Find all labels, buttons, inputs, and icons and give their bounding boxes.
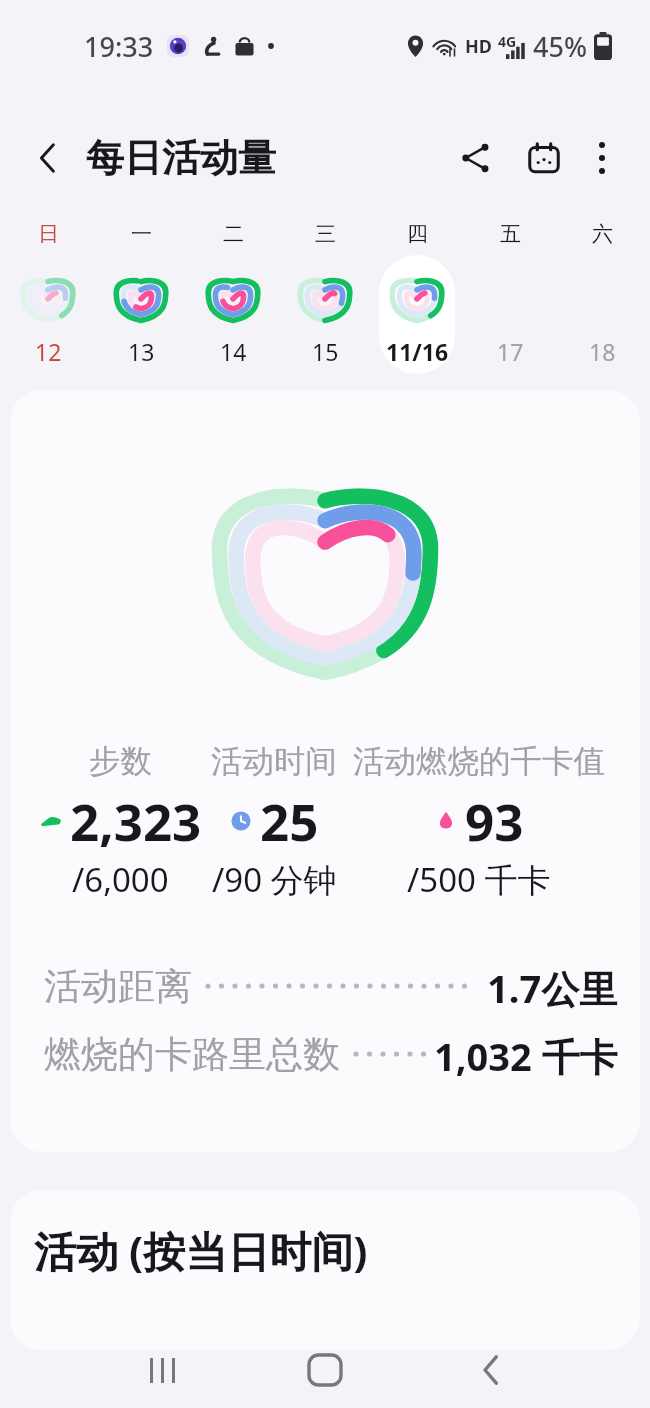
button[interactable]: Recent apps — [126, 1334, 198, 1406]
button[interactable]: Back — [455, 1334, 527, 1406]
staticText: 19:33 — [84, 28, 154, 65]
staticText: 11/16 — [386, 336, 449, 366]
staticText: 17 — [497, 336, 524, 366]
staticText: 25 — [260, 786, 319, 855]
button[interactable]: Home — [289, 1334, 361, 1406]
staticText: 15 — [312, 336, 339, 366]
staticText: /6,000 — [72, 857, 169, 902]
staticText: 五 — [500, 221, 521, 247]
staticText: 12 — [35, 336, 62, 366]
button[interactable]: 六 — [558, 208, 646, 388]
staticText: 三 — [315, 221, 336, 247]
staticText: 步数 — [89, 742, 152, 782]
staticText: 一 — [131, 221, 152, 247]
staticText: 二 — [223, 221, 244, 247]
button[interactable]: More options — [578, 134, 626, 182]
staticText: 每日活动量 — [86, 134, 276, 182]
button[interactable]: 一 — [97, 208, 185, 388]
button[interactable]: 五 — [466, 208, 554, 388]
staticText: 18 — [589, 336, 616, 366]
button[interactable]: Calendar — [516, 130, 572, 186]
staticText: 14 — [220, 336, 247, 366]
staticText: 93 — [465, 786, 524, 855]
staticText: 45% — [533, 28, 587, 65]
button[interactable]: Back — [22, 132, 74, 184]
staticText: /500 千卡 — [407, 857, 551, 902]
button[interactable]: 三 — [281, 208, 369, 388]
staticText: 1,032 千卡 — [434, 1030, 618, 1078]
button[interactable]: Share — [448, 130, 504, 186]
staticText: 1.7公里 — [487, 962, 618, 1010]
staticText: 活动 (按当日时间) — [34, 1222, 368, 1279]
staticText: 13 — [128, 336, 155, 366]
staticText: /90 分钟 — [212, 857, 337, 902]
staticText: 活动时间 — [211, 742, 337, 782]
staticText: HD — [465, 34, 492, 59]
button[interactable]: 四 — [373, 208, 461, 388]
staticText: 日 — [38, 221, 59, 247]
staticText: 活动燃烧的千卡值 — [353, 742, 605, 782]
staticText: 六 — [592, 221, 613, 247]
button[interactable]: 日 — [4, 208, 92, 388]
staticText: 燃烧的卡路里总数 — [44, 1031, 340, 1078]
staticText: 四 — [407, 221, 428, 247]
staticText: 活动距离 — [44, 963, 192, 1010]
staticText: 2,323 — [70, 786, 202, 855]
staticText: 4G — [498, 32, 517, 51]
button[interactable]: 二 — [189, 208, 277, 388]
